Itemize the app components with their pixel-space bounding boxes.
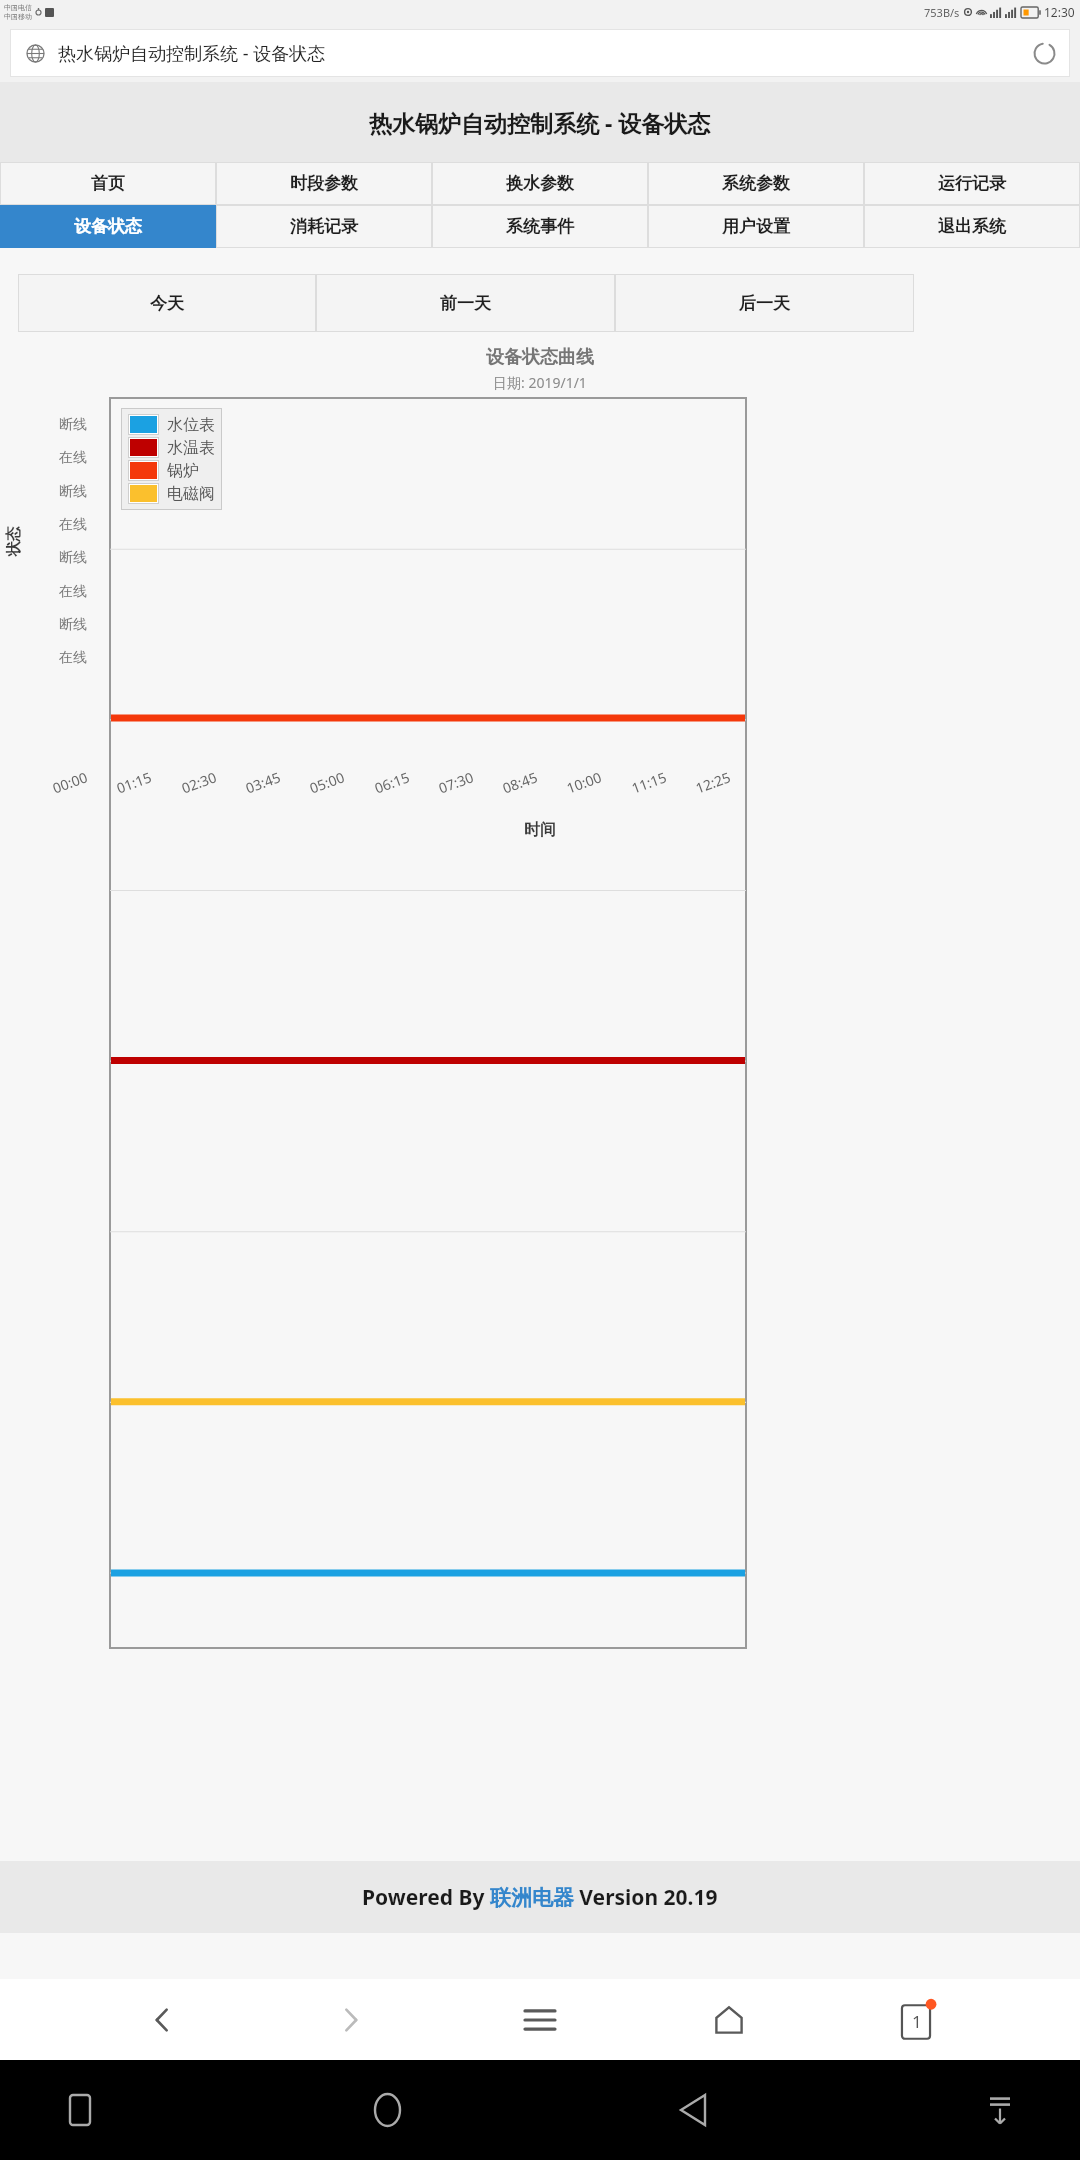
- staticText: 在线: [59, 449, 87, 467]
- button[interactable]: 今天: [18, 274, 316, 332]
- staticText: 热水锅炉自动控制系统 - 设备状态: [58, 41, 1022, 66]
- staticText: 锅炉: [167, 461, 199, 481]
- button[interactable]: Recents: [50, 2080, 110, 2140]
- staticText: 设备状态: [74, 216, 142, 237]
- staticText: 10:00: [564, 767, 604, 798]
- staticText: 设备状态曲线: [486, 346, 594, 369]
- button[interactable]: 设备状态: [0, 205, 216, 248]
- staticText: 换水参数: [506, 173, 574, 194]
- staticText: 06:15: [372, 767, 412, 798]
- button[interactable]: 系统事件: [432, 205, 648, 248]
- button[interactable]: Forward: [324, 1993, 378, 2047]
- button[interactable]: Back: [135, 1993, 189, 2047]
- button[interactable]: 退出系统: [864, 205, 1080, 248]
- staticText: 前一天: [440, 293, 491, 314]
- staticText: 在线: [59, 649, 87, 667]
- button[interactable]: 运行记录: [864, 162, 1080, 205]
- staticText: 12:25: [693, 767, 733, 798]
- staticText: 03:45: [243, 767, 283, 798]
- staticText: 在线: [59, 516, 87, 534]
- button[interactable]: Menu: [513, 1993, 567, 2047]
- staticText: 日期: 2019/1/1: [493, 373, 587, 392]
- button[interactable]: 消耗记录: [216, 205, 432, 248]
- staticText: 08:45: [500, 767, 540, 798]
- staticText: 系统事件: [506, 216, 574, 237]
- staticText: 断线: [59, 416, 87, 434]
- staticText: 中国电信: [4, 3, 32, 12]
- staticText: 在线: [59, 583, 87, 601]
- staticText: 中国移动: [4, 12, 32, 21]
- staticText: 00:00: [50, 767, 90, 798]
- staticText: 断线: [59, 549, 87, 567]
- staticText: 退出系统: [938, 216, 1006, 237]
- staticText: 断线: [59, 616, 87, 634]
- button[interactable]: 时段参数: [216, 162, 432, 205]
- staticText: 后一天: [739, 293, 790, 314]
- staticText: 电磁阀: [167, 484, 215, 504]
- staticText: 今天: [150, 293, 184, 314]
- staticText: 01:15: [114, 767, 154, 798]
- staticText: 12:30: [1044, 4, 1075, 20]
- staticText: 1: [912, 2010, 922, 2033]
- button[interactable]: Home: [702, 1993, 756, 2047]
- staticText: 水温表: [167, 438, 215, 458]
- staticText: 11:15: [629, 767, 669, 798]
- button[interactable]: 系统参数: [648, 162, 864, 205]
- staticText: 首页: [91, 173, 125, 194]
- button[interactable]: Tabs: [891, 1993, 945, 2047]
- staticText: 时段参数: [290, 173, 358, 194]
- staticText: 用户设置: [722, 216, 790, 237]
- staticText: 状态: [3, 526, 22, 556]
- staticText: 07:30: [436, 767, 476, 798]
- staticText: 水位表: [167, 415, 215, 435]
- button[interactable]: 热水锅炉自动控制系统 - 设备状态: [10, 29, 1070, 77]
- staticText: 热水锅炉自动控制系统 - 设备状态: [369, 107, 711, 138]
- staticText: 753B/s: [924, 5, 960, 20]
- staticText: 断线: [59, 483, 87, 501]
- button[interactable]: 用户设置: [648, 205, 864, 248]
- button[interactable]: 后一天: [615, 274, 914, 332]
- button[interactable]: 首页: [0, 162, 216, 205]
- staticText: 消耗记录: [290, 216, 358, 237]
- staticText: Powered By 联洲电器 Version 20.19: [362, 1883, 718, 1912]
- staticText: 时间: [524, 820, 556, 840]
- staticText: 运行记录: [938, 173, 1006, 194]
- staticText: 系统参数: [722, 173, 790, 194]
- button[interactable]: Back: [663, 2080, 723, 2140]
- button[interactable]: Hide keyboard: [970, 2080, 1030, 2140]
- button[interactable]: 换水参数: [432, 162, 648, 205]
- staticText: 02:30: [179, 767, 219, 798]
- button[interactable]: Home: [357, 2080, 417, 2140]
- button[interactable]: Refresh: [1022, 31, 1066, 75]
- button[interactable]: 前一天: [316, 274, 615, 332]
- staticText: 05:00: [307, 767, 347, 798]
